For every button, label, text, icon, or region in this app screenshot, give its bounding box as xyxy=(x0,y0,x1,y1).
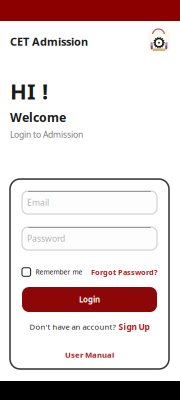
staticText: Don't have an account? xyxy=(29,322,115,332)
staticText: Forgot Password? xyxy=(91,267,157,277)
staticText: Password xyxy=(27,233,65,244)
button[interactable]: Sign Up xyxy=(118,321,149,332)
staticText: CET Admission xyxy=(10,34,88,49)
staticText: Login xyxy=(79,294,100,305)
staticText: HI ! xyxy=(10,76,48,106)
button[interactable]: Login xyxy=(22,287,157,312)
button[interactable]: User Manual xyxy=(65,349,114,360)
button[interactable]: Forgot Password? xyxy=(91,267,157,277)
staticText: Sign Up xyxy=(118,321,149,332)
staticText: Email xyxy=(27,197,49,208)
staticText: Welcome xyxy=(10,109,66,126)
staticText: Login to Admission xyxy=(10,129,83,140)
button[interactable]: Institution logo xyxy=(148,30,170,52)
button[interactable]: Remember me xyxy=(22,267,83,277)
staticText: User Manual xyxy=(65,349,114,360)
staticText: Remember me xyxy=(36,267,83,277)
